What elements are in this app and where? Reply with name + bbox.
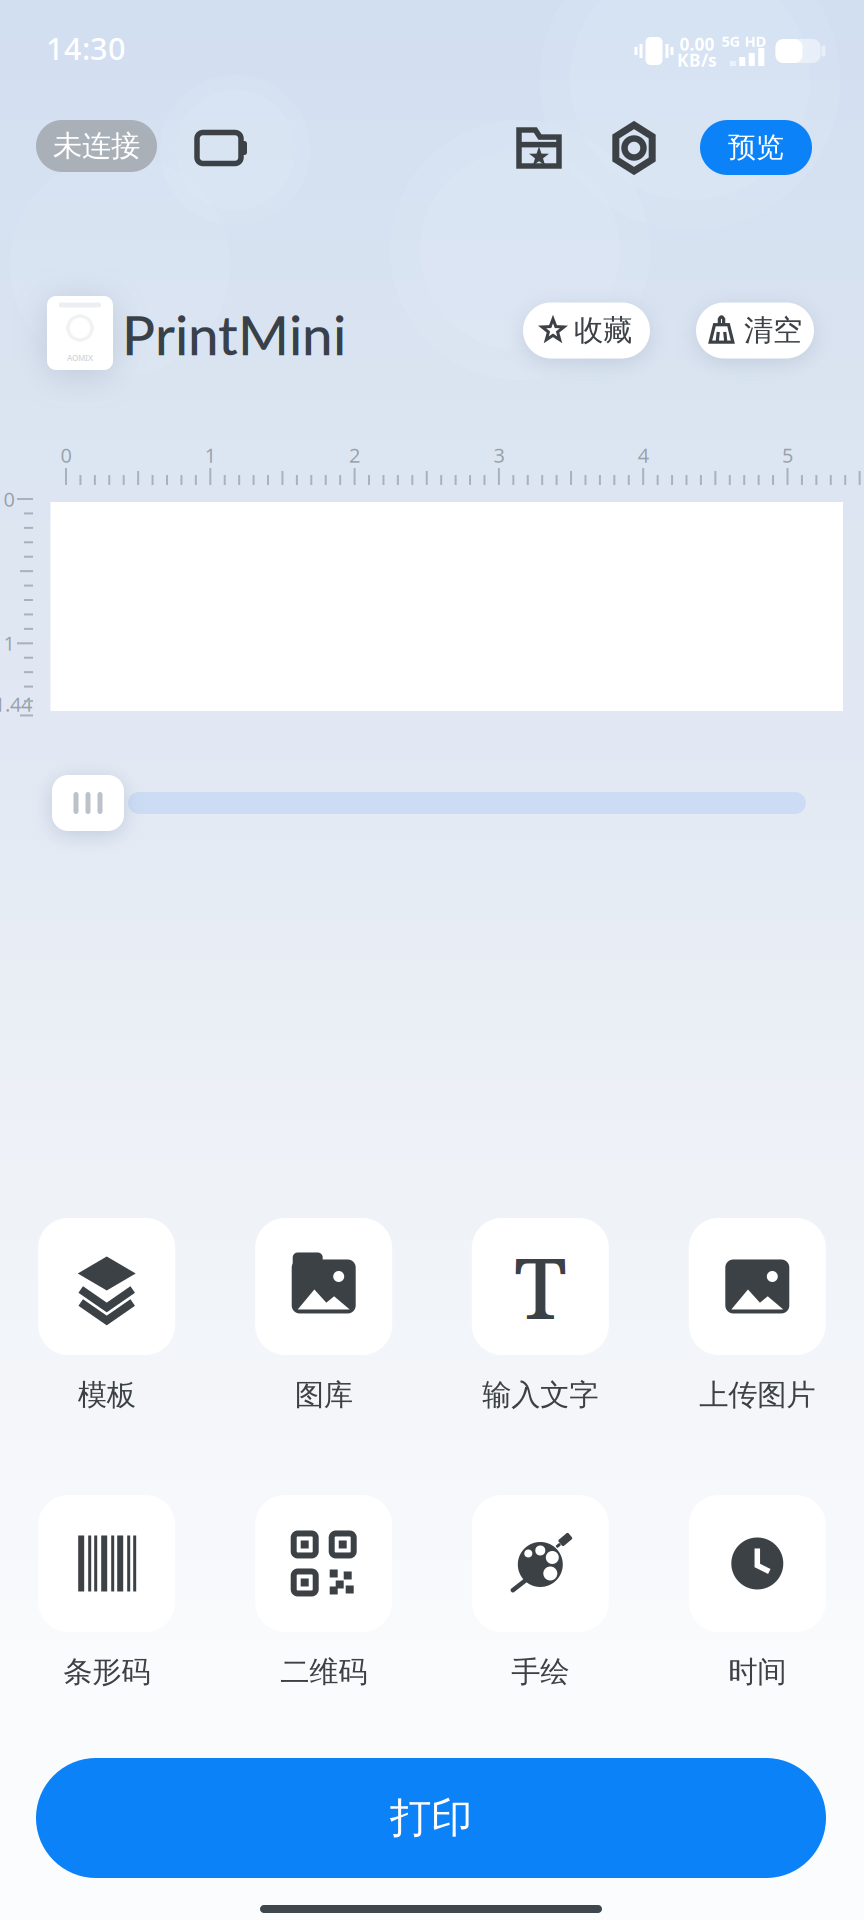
button[interactable]: 预览: [700, 120, 812, 175]
button[interactable]: 收藏: [523, 302, 650, 358]
staticText: 0: [3, 486, 14, 512]
staticText: 1: [205, 442, 216, 468]
staticText: 4: [638, 442, 649, 468]
button[interactable]: 手绘: [472, 1495, 609, 1690]
staticText: 时间: [728, 1654, 786, 1690]
staticText: T: [514, 1229, 566, 1344]
staticText: 二维码: [280, 1654, 367, 1690]
button[interactable]: 图库: [255, 1218, 392, 1413]
staticText: 未连接: [53, 128, 140, 164]
staticText: 输入文字: [482, 1377, 598, 1413]
button[interactable]: 收藏夹: [514, 125, 564, 171]
button[interactable]: 条形码: [38, 1495, 175, 1690]
button[interactable]: 时间: [689, 1495, 826, 1690]
staticText: 1: [3, 630, 14, 656]
staticText: 5G HD: [721, 31, 766, 51]
staticText: PrintMini: [122, 301, 346, 367]
staticText: 0: [60, 442, 71, 468]
staticText: 3: [493, 442, 504, 468]
staticText: 图库: [295, 1377, 353, 1413]
staticText: 0.00: [679, 32, 714, 55]
button[interactable]: 清空: [696, 302, 814, 358]
button[interactable]: 连接状态: [36, 120, 157, 172]
staticText: 预览: [728, 130, 784, 165]
staticText: 2: [349, 442, 360, 468]
staticText: KB/s: [677, 48, 717, 71]
staticText: 模板: [78, 1377, 136, 1413]
staticText: 清空: [744, 312, 802, 348]
staticText: 收藏: [574, 312, 632, 348]
staticText: 1.44: [0, 691, 32, 717]
staticText: 上传图片: [699, 1377, 815, 1413]
staticText: AOMIX: [67, 353, 93, 363]
button[interactable]: 设置: [609, 123, 659, 173]
staticText: 5: [782, 442, 793, 468]
button[interactable]: 上传图片: [689, 1218, 826, 1413]
button[interactable]: 模板: [38, 1218, 175, 1413]
staticText: 条形码: [63, 1654, 150, 1690]
button[interactable]: 二维码: [255, 1495, 392, 1690]
staticText: 14:30: [46, 28, 126, 68]
button[interactable]: 纸张长度调节: [52, 775, 124, 831]
staticText: 手绘: [511, 1654, 569, 1690]
staticText: 打印: [390, 1793, 472, 1843]
button[interactable]: T: [472, 1218, 609, 1413]
button[interactable]: 打印: [36, 1758, 826, 1878]
